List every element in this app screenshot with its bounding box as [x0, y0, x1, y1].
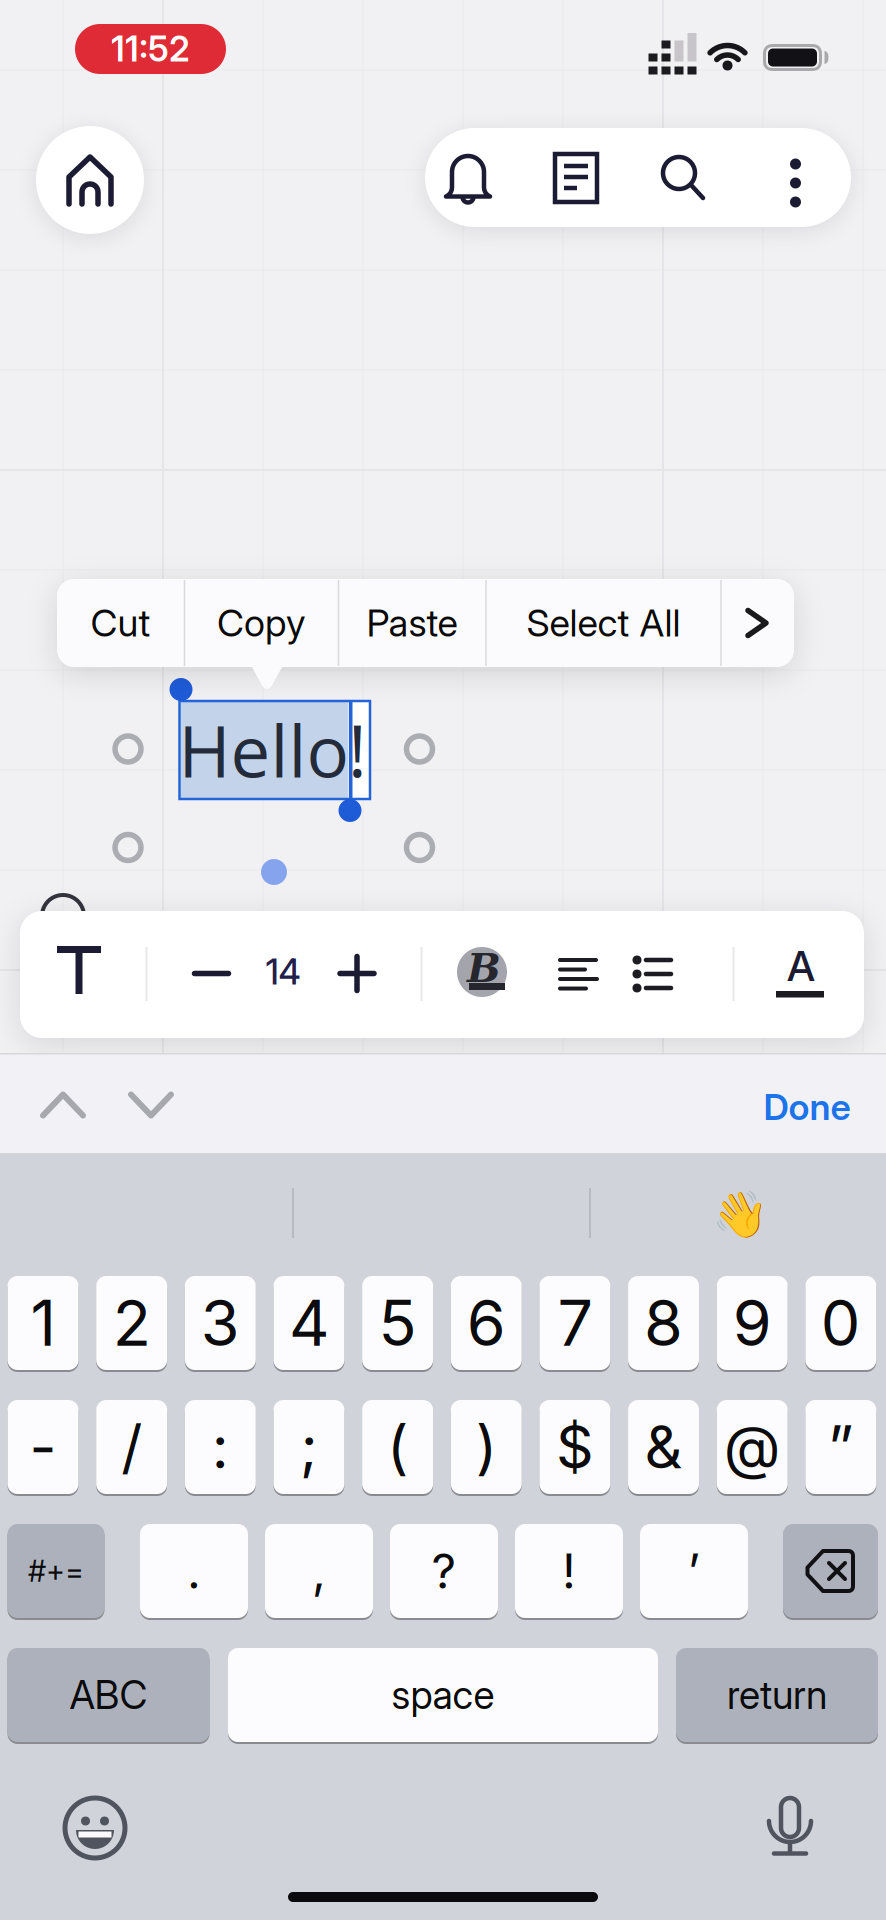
- button[interactable]: [631, 123, 737, 233]
- staticText: $: [556, 1411, 594, 1482]
- button[interactable]: [415, 124, 521, 234]
- button[interactable]: $: [539, 1399, 610, 1495]
- button[interactable]: #+=: [7, 1523, 104, 1619]
- button[interactable]: [117, 1075, 185, 1135]
- button[interactable]: -: [7, 1399, 78, 1495]
- staticText: Cut: [90, 600, 150, 646]
- button[interactable]: (: [362, 1399, 433, 1495]
- staticText: 7: [557, 1285, 592, 1361]
- staticText: :: [212, 1411, 229, 1482]
- button[interactable]: 6: [451, 1275, 522, 1371]
- staticText: ’: [687, 1542, 700, 1600]
- button[interactable]: 8: [628, 1275, 699, 1371]
- staticText: (: [387, 1411, 408, 1482]
- staticText: A: [787, 941, 815, 991]
- button[interactable]: @: [717, 1399, 788, 1495]
- button[interactable]: ’: [640, 1523, 748, 1619]
- staticText: /: [121, 1411, 142, 1482]
- staticText: !: [562, 1542, 576, 1600]
- staticText: ,: [312, 1542, 326, 1600]
- button[interactable]: [783, 1523, 878, 1619]
- button[interactable]: Done: [737, 1072, 877, 1142]
- staticText: 0: [821, 1285, 861, 1361]
- staticText: ): [476, 1411, 497, 1482]
- button[interactable]: ;: [273, 1399, 344, 1495]
- button[interactable]: [29, 1075, 97, 1135]
- button[interactable]: B: [433, 924, 533, 1024]
- staticText: 5: [379, 1285, 417, 1361]
- button[interactable]: [760, 1794, 820, 1858]
- button[interactable]: ?: [390, 1523, 498, 1619]
- button[interactable]: Paste: [338, 579, 485, 667]
- button[interactable]: space: [228, 1647, 658, 1743]
- button[interactable]: [742, 130, 848, 240]
- staticText: 6: [467, 1285, 506, 1361]
- staticText: ;: [300, 1411, 318, 1482]
- button[interactable]: 3: [185, 1275, 256, 1371]
- staticText: Done: [763, 1085, 850, 1129]
- staticText: 3: [201, 1285, 240, 1361]
- button[interactable]: ): [451, 1399, 522, 1495]
- button[interactable]: Cut: [57, 579, 184, 667]
- button[interactable]: 0: [805, 1275, 876, 1371]
- button[interactable]: return: [676, 1647, 878, 1743]
- staticText: 11:52: [111, 28, 190, 70]
- button[interactable]: 4: [273, 1275, 344, 1371]
- staticText: 2: [113, 1285, 151, 1361]
- button[interactable]: [26, 923, 132, 1023]
- button[interactable]: 11:52: [75, 24, 226, 74]
- button[interactable]: [166, 923, 256, 1023]
- staticText: .: [187, 1542, 201, 1600]
- button[interactable]: ,: [265, 1523, 373, 1619]
- staticText: 8: [644, 1285, 683, 1361]
- button[interactable]: [36, 126, 144, 234]
- staticText: 1: [30, 1285, 55, 1361]
- staticText: ABC: [69, 1672, 147, 1718]
- staticText: 14: [265, 951, 300, 993]
- button[interactable]: 1: [7, 1275, 78, 1371]
- staticText: return: [727, 1672, 827, 1718]
- staticText: 4: [289, 1285, 329, 1361]
- button[interactable]: 7: [539, 1275, 610, 1371]
- button[interactable]: .: [140, 1523, 248, 1619]
- staticText: @: [724, 1411, 781, 1482]
- staticText: ?: [431, 1542, 456, 1600]
- button[interactable]: [721, 579, 794, 667]
- button[interactable]: [64, 1797, 126, 1859]
- staticText: Copy: [217, 600, 306, 646]
- button[interactable]: ABC: [7, 1647, 209, 1743]
- button[interactable]: [528, 924, 628, 1024]
- staticText: space: [391, 1672, 494, 1718]
- staticText: ”: [828, 1411, 854, 1482]
- staticText: 9: [733, 1285, 772, 1361]
- button[interactable]: ”: [805, 1399, 876, 1495]
- button[interactable]: 9: [717, 1275, 788, 1371]
- button[interactable]: A: [749, 924, 853, 1024]
- button[interactable]: 5: [362, 1275, 433, 1371]
- button[interactable]: /: [96, 1399, 167, 1495]
- staticText: #+=: [28, 1553, 84, 1589]
- staticText: Select All: [526, 600, 680, 646]
- button[interactable]: !: [515, 1523, 623, 1619]
- staticText: B: [467, 944, 501, 991]
- button[interactable]: &: [628, 1399, 699, 1495]
- staticText: &: [645, 1411, 683, 1482]
- button[interactable]: [523, 123, 629, 233]
- button[interactable]: :: [185, 1399, 256, 1495]
- button[interactable]: [312, 923, 402, 1023]
- staticText: 👋: [712, 1188, 768, 1241]
- button[interactable]: Select All: [486, 579, 721, 667]
- button[interactable]: [602, 924, 702, 1024]
- staticText: !: [348, 702, 367, 798]
- button[interactable]: Copy: [184, 579, 338, 667]
- staticText: Paste: [366, 600, 457, 646]
- staticText: -: [29, 1411, 56, 1482]
- staticText: Hello: [178, 702, 349, 798]
- button[interactable]: 2: [96, 1275, 167, 1371]
